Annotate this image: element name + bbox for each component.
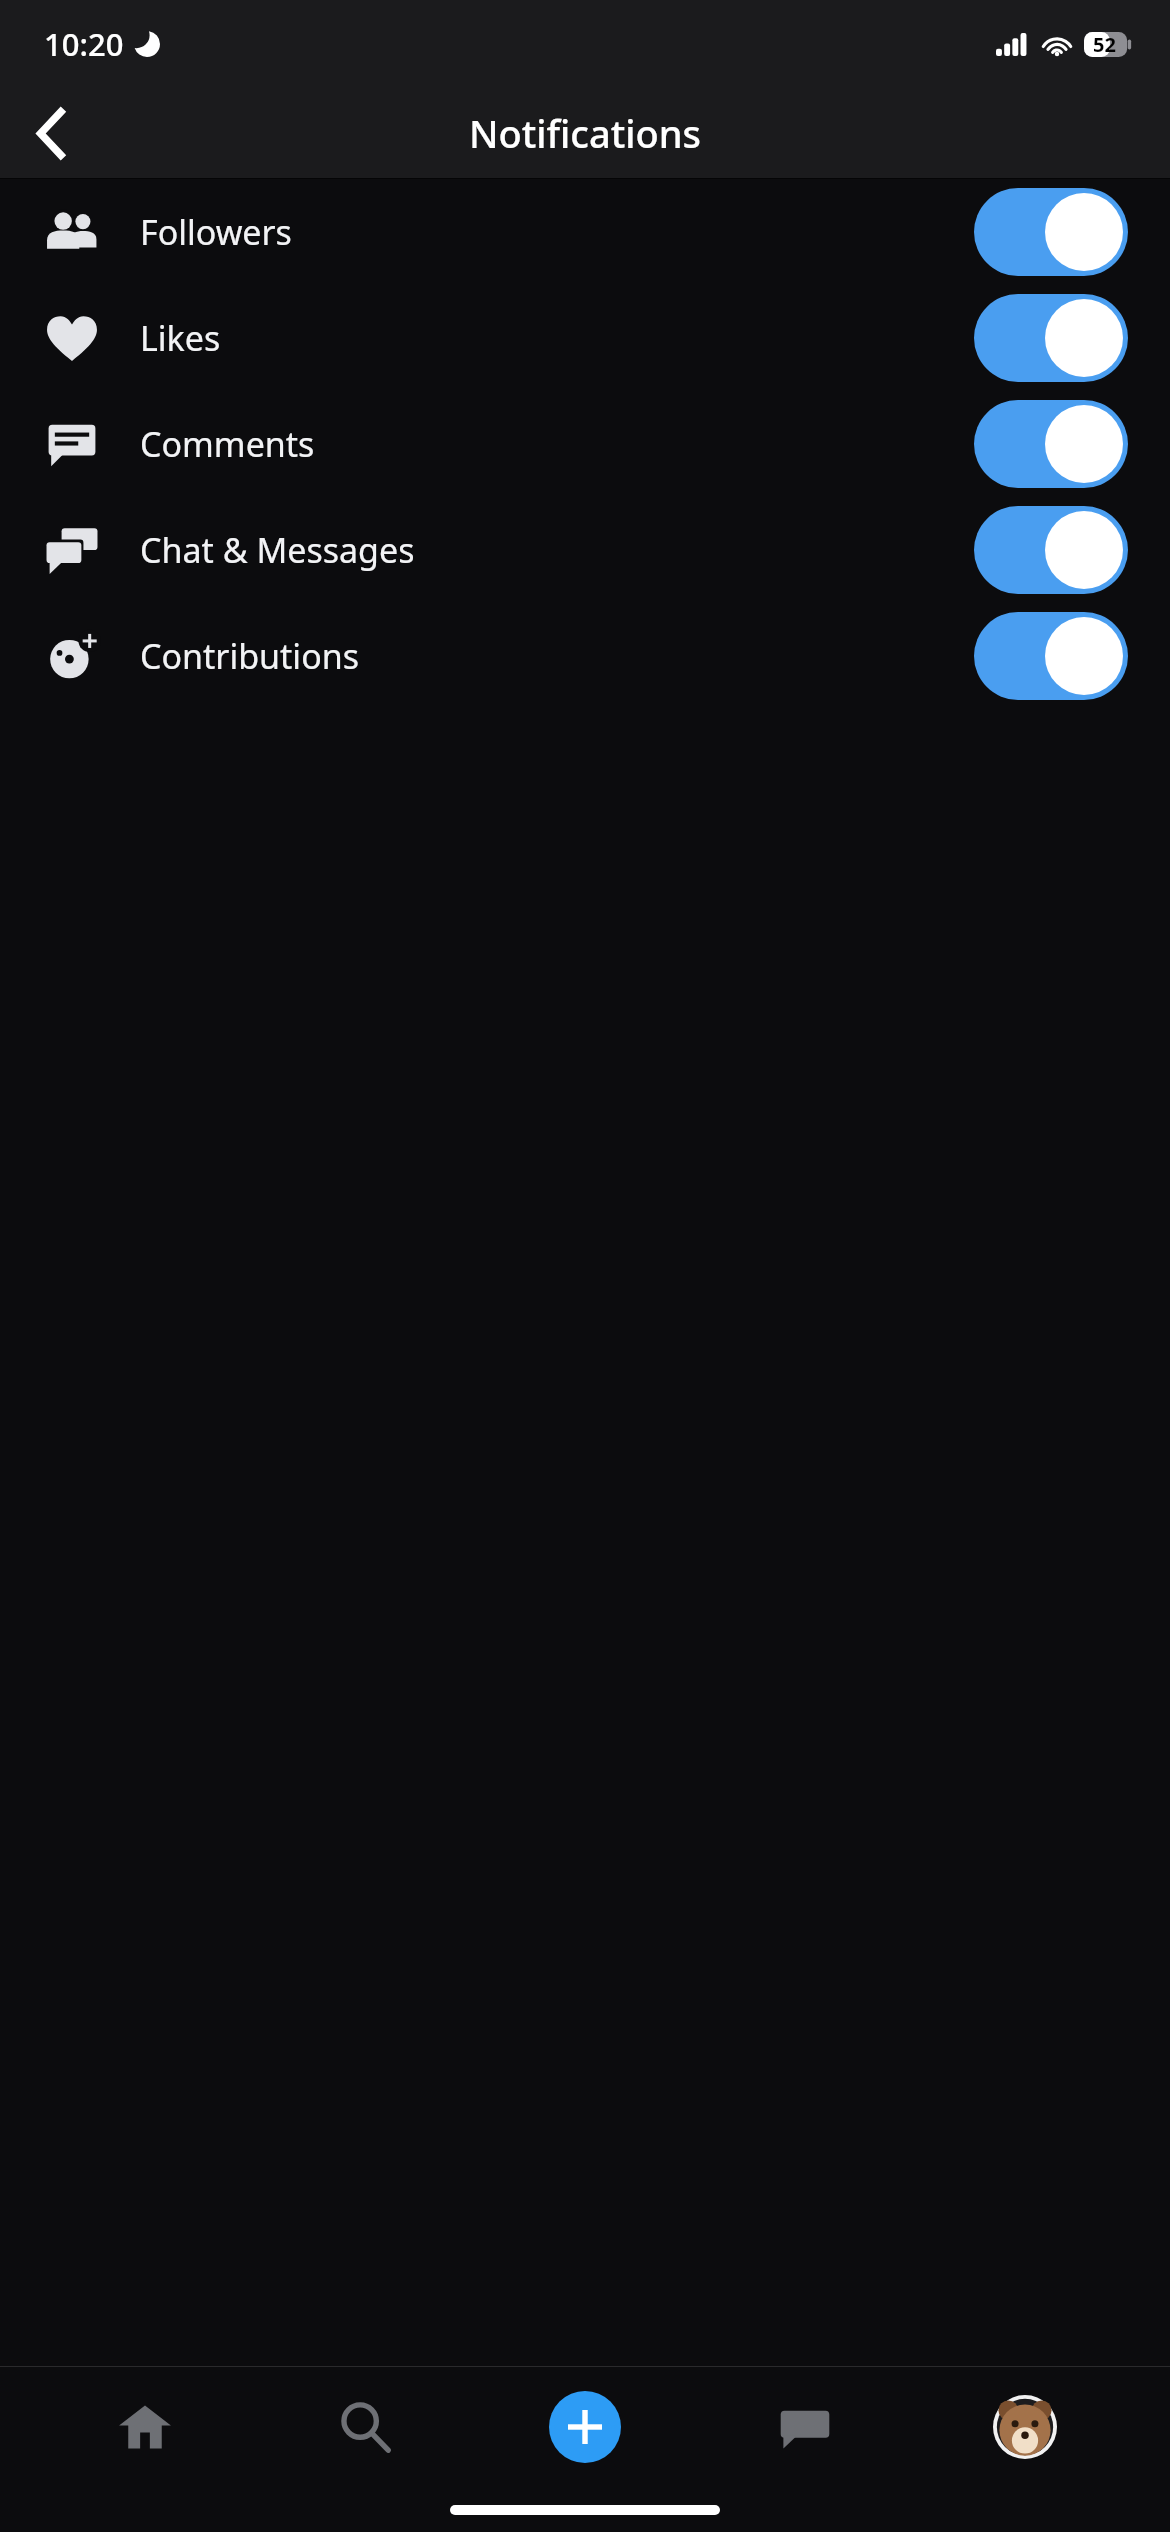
button[interactable]: Comments — [0, 391, 1170, 497]
button[interactable]: Toggle — [974, 294, 1128, 382]
button[interactable]: Toggle — [974, 400, 1128, 488]
button[interactable]: Likes — [0, 285, 1170, 391]
button[interactable]: Toggle — [974, 612, 1128, 700]
button[interactable]: Home — [70, 2366, 220, 2488]
staticText: 52 — [1093, 31, 1116, 58]
staticText: Contributions — [140, 633, 974, 679]
staticText: Likes — [140, 315, 974, 361]
button[interactable]: Toggle — [974, 506, 1128, 594]
button[interactable]: Profile — [950, 2366, 1100, 2488]
button[interactable]: Search — [290, 2366, 440, 2488]
staticText: Followers — [140, 209, 974, 255]
button[interactable]: Messages — [730, 2366, 880, 2488]
button[interactable]: Followers — [0, 179, 1170, 285]
button[interactable]: Back — [16, 98, 86, 168]
button[interactable]: Create — [510, 2366, 660, 2488]
staticText: Notifications — [469, 107, 702, 159]
staticText: Comments — [140, 421, 974, 467]
button[interactable]: Contributions — [0, 603, 1170, 709]
button[interactable]: Toggle — [974, 188, 1128, 276]
staticText: Chat & Messages — [140, 527, 974, 573]
button[interactable]: Chat & Messages — [0, 497, 1170, 603]
staticText: 10:20 — [44, 23, 124, 65]
